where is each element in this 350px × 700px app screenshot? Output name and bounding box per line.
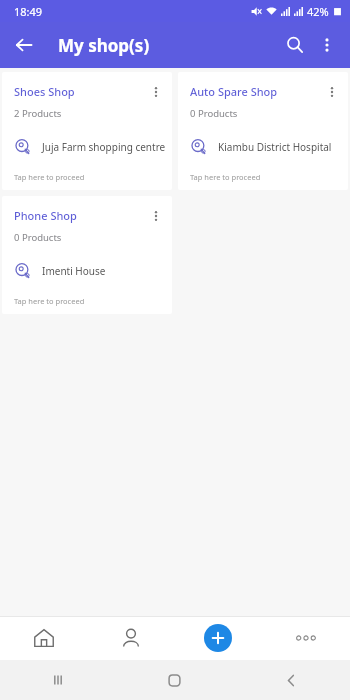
button[interactable]: Back <box>233 660 350 700</box>
button[interactable]: Shop options <box>322 82 342 102</box>
button[interactable]: Home <box>0 616 87 660</box>
button[interactable]: Shoes Shop <box>2 72 172 190</box>
button[interactable]: Auto Spare Shop <box>178 72 348 190</box>
button[interactable]: Profile <box>87 616 174 660</box>
staticText: Tap here to proceed <box>190 172 261 182</box>
button[interactable]: More <box>262 616 350 660</box>
staticText: Shoes Shop <box>14 84 75 99</box>
staticText: Tap here to proceed <box>14 296 85 306</box>
staticText: Imenti House <box>42 264 106 278</box>
button[interactable]: More options <box>312 30 342 60</box>
staticText: 0 Products <box>14 231 62 244</box>
button[interactable]: Back <box>6 27 42 63</box>
button[interactable]: Recents <box>0 660 116 700</box>
staticText: 2 Products <box>14 107 62 120</box>
button[interactable]: Shop options <box>146 82 166 102</box>
staticText: 0 Products <box>190 107 238 120</box>
button[interactable]: Shop options <box>146 206 166 226</box>
staticText: Kiambu District Hospital <box>218 140 332 154</box>
staticText: My shop(s) <box>58 34 150 57</box>
staticText: Auto Spare Shop <box>190 84 278 99</box>
button[interactable]: Phone Shop <box>2 196 172 314</box>
staticText: Phone Shop <box>14 208 77 223</box>
staticText: Tap here to proceed <box>14 172 85 182</box>
button[interactable]: Home <box>116 660 233 700</box>
staticText: 42% <box>307 4 329 19</box>
staticText: 18:49 <box>14 4 43 19</box>
button[interactable]: Search <box>278 28 312 62</box>
staticText: Juja Farm shopping centre <box>42 140 166 154</box>
button[interactable]: Add shop <box>174 616 262 660</box>
